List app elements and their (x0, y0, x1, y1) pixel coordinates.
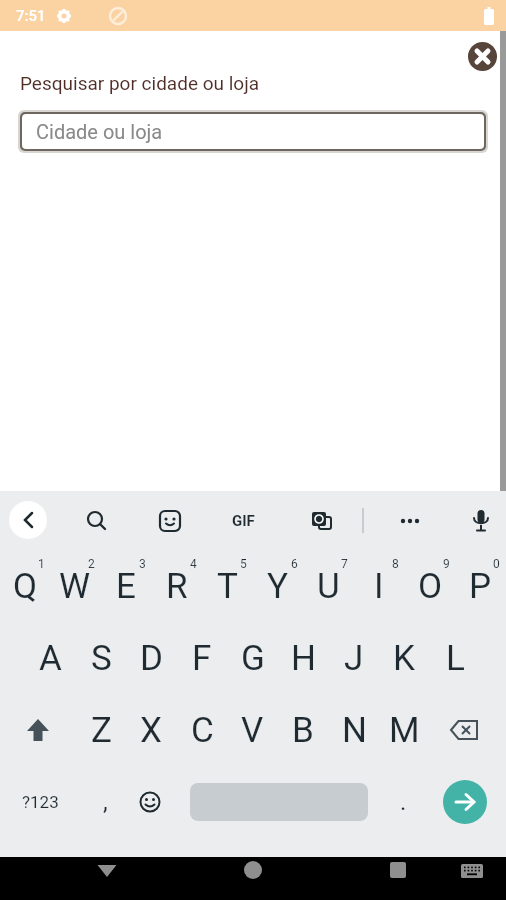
button[interactable]: J (329, 622, 379, 694)
button[interactable]: Z (76, 694, 126, 766)
staticText: V (241, 710, 264, 751)
button[interactable] (87, 857, 127, 900)
staticText: O (418, 566, 443, 607)
button[interactable]: V (227, 694, 277, 766)
button[interactable]: . (383, 766, 423, 838)
staticText: M (389, 710, 420, 751)
staticText: . (400, 788, 407, 816)
button[interactable]: A (25, 622, 75, 694)
button[interactable]: R (152, 550, 202, 622)
staticText: W (59, 566, 91, 607)
button[interactable]: ?123 (8, 766, 72, 838)
button[interactable]: L (430, 622, 480, 694)
button[interactable] (378, 857, 418, 900)
staticText: I (374, 566, 384, 607)
staticText: A (39, 638, 62, 679)
button[interactable] (190, 783, 368, 821)
staticText: 1 (38, 557, 45, 571)
button[interactable]: G (228, 622, 278, 694)
button[interactable]: GIF (215, 491, 271, 550)
staticText: U (317, 566, 340, 607)
staticText: B (292, 710, 314, 751)
button[interactable] (75, 491, 119, 550)
staticText: 6 (291, 557, 298, 571)
button[interactable]: T (202, 550, 252, 622)
staticText: X (140, 710, 162, 751)
staticText: Y (267, 566, 289, 607)
button[interactable]: D (126, 622, 176, 694)
button[interactable]: Cidade ou loja (22, 114, 484, 149)
staticText: 3 (139, 557, 146, 571)
staticText: Pesquisar por cidade ou loja (20, 72, 260, 94)
button[interactable]: , (85, 766, 125, 838)
button[interactable]: Q (0, 550, 50, 622)
button[interactable] (443, 780, 487, 824)
staticText: 0 (493, 557, 500, 571)
staticText: C (191, 710, 214, 751)
staticText: E (116, 566, 136, 607)
staticText: 7:51 (16, 7, 46, 25)
button[interactable] (468, 42, 497, 71)
staticText: Z (91, 710, 112, 751)
button[interactable]: O (405, 550, 455, 622)
button[interactable] (9, 501, 47, 539)
staticText: T (217, 566, 238, 607)
staticText: , (103, 788, 108, 816)
staticText: Q (13, 566, 38, 607)
staticText: R (166, 566, 188, 607)
button[interactable] (128, 766, 172, 838)
button[interactable]: C (177, 694, 227, 766)
staticText: 2 (88, 557, 95, 571)
button[interactable]: H (278, 622, 328, 694)
button[interactable] (300, 491, 344, 550)
staticText: 7 (341, 557, 348, 571)
staticText: D (140, 638, 163, 679)
button[interactable] (233, 857, 273, 900)
button[interactable] (148, 491, 192, 550)
button[interactable]: F (177, 622, 227, 694)
staticText: L (446, 638, 465, 679)
staticText: 8 (392, 557, 399, 571)
staticText: 5 (240, 557, 247, 571)
staticText: 9 (443, 557, 450, 571)
button[interactable]: M (379, 694, 429, 766)
button[interactable] (434, 694, 494, 766)
button[interactable]: S (76, 622, 126, 694)
staticText: ?123 (22, 792, 59, 812)
staticText: H (291, 638, 316, 679)
button[interactable]: I (354, 550, 404, 622)
button[interactable]: Y (253, 550, 303, 622)
button[interactable]: K (379, 622, 429, 694)
button[interactable] (388, 491, 432, 550)
button[interactable]: N (329, 694, 379, 766)
staticText: N (342, 710, 367, 751)
button[interactable] (8, 694, 68, 766)
staticText: J (344, 638, 364, 679)
button[interactable]: P (455, 550, 505, 622)
staticText: GIF (232, 512, 255, 530)
button[interactable] (452, 857, 492, 900)
button[interactable]: B (278, 694, 328, 766)
staticText: 4 (190, 557, 197, 571)
button[interactable]: E (101, 550, 151, 622)
staticText: F (192, 638, 212, 679)
staticText: S (91, 638, 112, 679)
staticText: Cidade ou loja (36, 120, 163, 143)
staticText: K (393, 638, 415, 679)
staticText: P (469, 566, 492, 607)
button[interactable]: W (50, 550, 100, 622)
button[interactable] (459, 491, 503, 550)
button[interactable]: U (303, 550, 353, 622)
staticText: G (241, 638, 265, 679)
button[interactable]: X (126, 694, 176, 766)
